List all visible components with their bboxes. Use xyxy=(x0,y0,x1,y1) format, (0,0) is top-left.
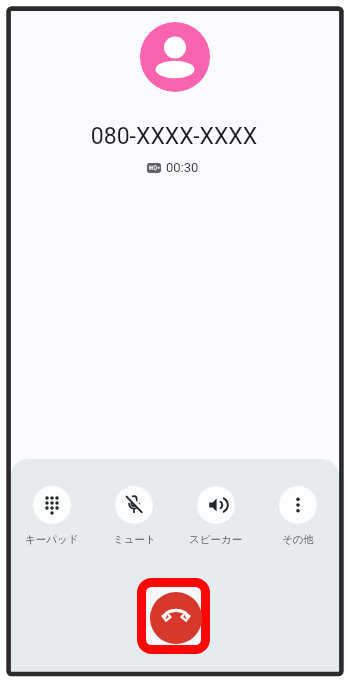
button[interactable]: その他 xyxy=(257,486,339,546)
staticText: 080-XXXX-XXXX xyxy=(0,123,349,150)
button[interactable]: キーパッド xyxy=(11,486,93,546)
staticText: キーパッド xyxy=(25,533,79,546)
staticText: その他 xyxy=(282,533,314,546)
button[interactable]: ミュート xyxy=(93,486,175,546)
staticText: 00:30 xyxy=(166,160,199,175)
staticText: スピーカー xyxy=(189,533,243,546)
button[interactable] xyxy=(150,592,202,644)
button[interactable]: スピーカー xyxy=(175,486,257,546)
staticText: ミュート xyxy=(113,533,156,546)
